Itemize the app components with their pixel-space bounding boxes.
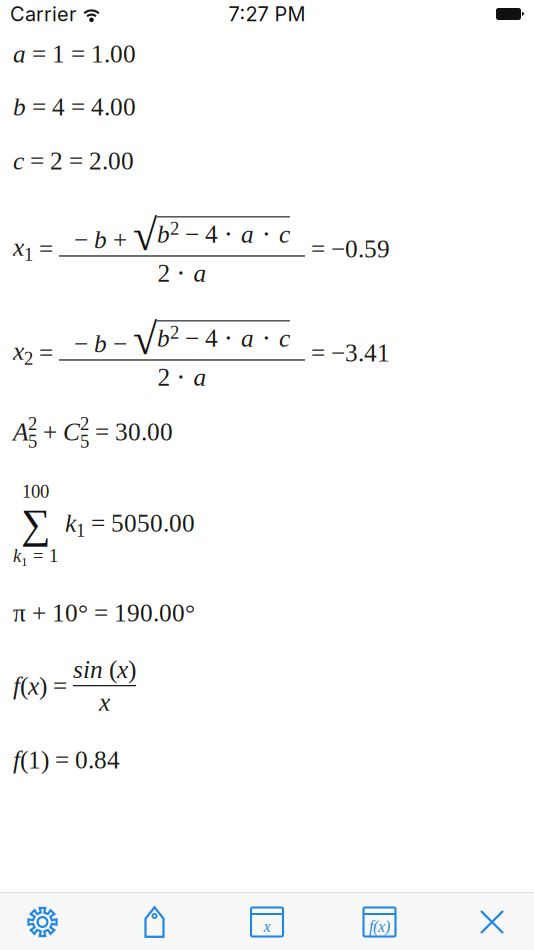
staticText: sin (x)	[73, 656, 136, 683]
staticText: x1	[13, 233, 33, 264]
staticText: 2 ⋅ a	[157, 363, 206, 391]
staticText: f(x)	[369, 918, 390, 935]
staticText: ∑	[21, 501, 50, 547]
button[interactable]: Functions	[334, 893, 424, 950]
button[interactable]: Settings	[0, 893, 87, 950]
staticText: √	[133, 315, 157, 363]
staticText: 2 ⋅ a	[157, 259, 206, 287]
staticText: C	[63, 418, 80, 446]
staticText: b = 4 = 4.00	[13, 93, 136, 121]
staticText: k1 = 5050.00	[65, 509, 195, 540]
staticText: 5	[28, 431, 37, 452]
staticText: x2	[13, 337, 33, 368]
button[interactable]: Constants	[109, 893, 199, 950]
staticText: π + 10° = 190.00°	[13, 599, 195, 627]
staticText: − b +	[74, 226, 133, 253]
staticText: 2	[28, 413, 37, 434]
staticText: +	[37, 418, 63, 446]
button[interactable]: Variables	[222, 893, 312, 950]
staticText: b2 − 4 ⋅ a ⋅ c	[157, 218, 290, 248]
staticText: 2	[80, 413, 89, 434]
staticText: =	[305, 235, 331, 263]
staticText: x	[263, 918, 270, 935]
staticText: b2 − 4 ⋅ a ⋅ c	[157, 322, 290, 352]
staticText: 100	[22, 481, 49, 502]
staticText: =	[47, 672, 73, 700]
staticText: a = 1 = 1.00	[13, 40, 136, 68]
staticText: =	[33, 235, 59, 263]
staticText: x	[99, 688, 110, 716]
staticText: =	[305, 339, 331, 367]
staticText: −3.41	[331, 339, 390, 367]
staticText: − b −	[74, 330, 133, 357]
staticText: f(1) = 0.84	[13, 746, 120, 774]
button[interactable]: Clear	[447, 893, 534, 950]
staticText: A	[13, 418, 28, 446]
staticText: c = 2 = 2.00	[13, 147, 134, 175]
staticText: k1 = 1	[13, 546, 58, 569]
staticText: −0.59	[331, 235, 390, 263]
staticText: Carrier	[10, 2, 76, 26]
staticText: = 30.00	[89, 418, 173, 446]
staticText: f(x)	[13, 672, 47, 700]
staticText: 7:27 PM	[228, 2, 305, 26]
staticText: =	[33, 339, 59, 367]
staticText: 5	[80, 431, 89, 452]
staticText: √	[133, 211, 157, 259]
